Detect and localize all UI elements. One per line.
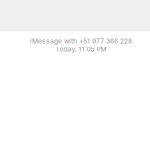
- staticText: Today, 11:05 PM: [55, 45, 106, 53]
- staticText: iMessage with +51 977 366 228: [30, 37, 132, 45]
